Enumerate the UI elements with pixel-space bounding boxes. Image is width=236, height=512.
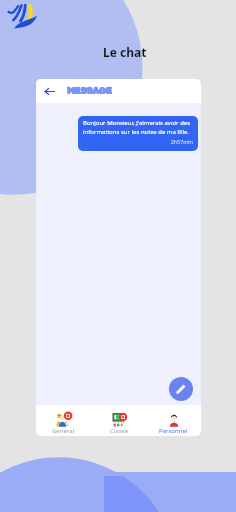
staticText: 2h57min xyxy=(83,138,193,145)
button[interactable]: General xyxy=(36,405,91,435)
staticText: General xyxy=(52,427,75,435)
button[interactable]: Compose message xyxy=(169,377,193,401)
button[interactable]: Classe xyxy=(91,405,146,435)
button[interactable]: Personnel xyxy=(146,405,201,435)
staticText: MESSAGE xyxy=(67,86,112,96)
button[interactable]: Back xyxy=(42,84,56,98)
staticText: Classe xyxy=(110,427,128,435)
staticText: Bonjour Monsieur, J'aimerais avoir des i… xyxy=(83,119,193,136)
staticText: Le chat xyxy=(103,44,147,60)
button[interactable]: Bonjour Monsieur, J'aimerais avoir des i… xyxy=(78,116,198,151)
staticText: Personnel xyxy=(159,427,188,435)
